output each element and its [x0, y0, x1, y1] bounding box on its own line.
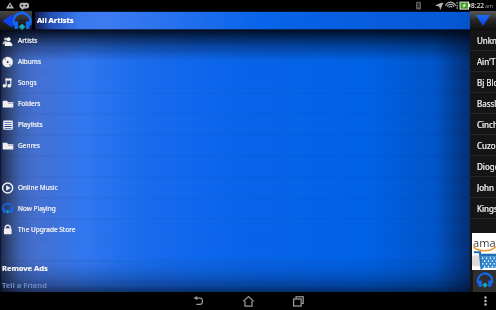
button[interactable]: Tell a Friend [0, 278, 470, 292]
staticText: Cinch [477, 119, 496, 130]
button[interactable]: Home [223, 292, 273, 310]
button[interactable]: Bassline [470, 93, 496, 114]
staticText: Artists [18, 36, 38, 45]
staticText: Online Music [18, 183, 58, 192]
button[interactable]: Ain'T Nothin [470, 51, 496, 72]
button[interactable]: Show artist list [470, 11, 496, 30]
button[interactable]: Genres [0, 135, 470, 156]
button[interactable]: Artists [0, 30, 470, 51]
staticText: amaz [473, 235, 496, 250]
staticText: Now Playing [18, 204, 56, 213]
button[interactable]: John Doe [470, 177, 496, 198]
button[interactable]: Bj Blockbuster [470, 72, 496, 93]
staticText: Kingsway [477, 203, 496, 214]
button[interactable]: Remove Ads [0, 257, 470, 278]
staticText: Bj Blockbuster [477, 77, 496, 88]
staticText: Albums [18, 57, 42, 66]
button[interactable]: Now playing [473, 270, 496, 292]
button[interactable]: Folders [0, 93, 470, 114]
staticText: Genres [18, 141, 40, 150]
staticText: 8:22 [471, 1, 484, 10]
button[interactable]: Albums [0, 51, 470, 72]
staticText: Songs [18, 78, 37, 87]
staticText: Diogenes [477, 161, 496, 172]
staticText: Ain'T Nothin [477, 56, 496, 67]
button[interactable]: Unknown Artist [470, 30, 496, 51]
staticText: am [485, 2, 494, 9]
staticText: Bassline [477, 98, 496, 109]
button[interactable]: Cinch [470, 114, 496, 135]
staticText: Unknown Artist [477, 35, 496, 46]
staticText: Playlists [18, 120, 43, 129]
staticText: Cuzo [477, 140, 496, 151]
staticText: John Doe [477, 182, 496, 193]
button[interactable]: Back [173, 292, 223, 310]
button[interactable]: Cuzo [470, 135, 496, 156]
button[interactable]: amaz [472, 233, 496, 270]
staticText: All Artists [37, 15, 74, 25]
staticText: Folders [18, 99, 41, 108]
button[interactable]: The Upgrade Store [0, 219, 470, 240]
staticText: Tell a Friend [2, 280, 47, 290]
staticText: Remove Ads [2, 263, 48, 273]
button[interactable]: Online Music [0, 177, 470, 198]
button[interactable]: Kingsway [470, 198, 496, 219]
button[interactable]: Now Playing [0, 198, 470, 219]
button[interactable]: Diogenes [470, 156, 496, 177]
staticText: The Upgrade Store [18, 225, 76, 234]
button[interactable]: Playlists [0, 114, 470, 135]
button[interactable]: Navigate up [0, 11, 32, 30]
button[interactable]: Recents [273, 292, 323, 310]
button[interactable]: Songs [0, 72, 470, 93]
button[interactable]: All Artists [35, 11, 470, 30]
button[interactable]: More options [474, 292, 496, 310]
